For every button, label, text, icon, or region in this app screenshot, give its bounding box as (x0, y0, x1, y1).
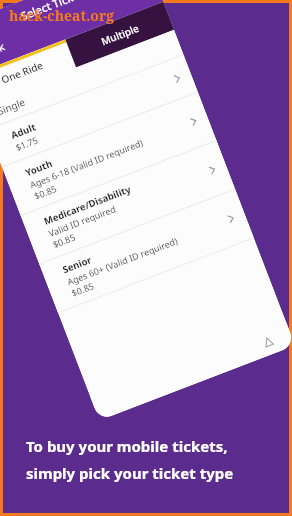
button[interactable]: Youth (2, 92, 217, 216)
staticText: Medicare/Disability (42, 182, 133, 228)
staticText: $1.75 (14, 133, 40, 153)
staticText: Multiple (99, 21, 141, 48)
staticText: $0.85 (32, 182, 59, 202)
staticText: Adult (9, 120, 38, 142)
button[interactable]: Back (0, 36, 10, 68)
staticText: Senior (61, 253, 94, 276)
button[interactable]: Multiple (65, 2, 174, 67)
staticText: $0.85 (69, 279, 96, 299)
staticText: Select Ticket (18, 0, 85, 23)
button[interactable]: Back (258, 332, 279, 352)
staticText: Youth (23, 157, 54, 179)
staticText: Ages 6-18 (Valid ID required) (28, 136, 145, 190)
button[interactable]: Senior (39, 189, 254, 313)
staticText: To buy your mobile tickets, (26, 436, 228, 456)
staticText: One Ride (0, 58, 45, 86)
staticText: Valid ID required (47, 202, 117, 239)
button[interactable]: One Ride (0, 39, 76, 105)
button[interactable]: Medicare/Disability (21, 141, 235, 265)
staticText: $0.85 (51, 230, 78, 250)
staticText: Back (0, 38, 7, 61)
staticText: Single (0, 95, 27, 118)
staticText: Ages 60+ (Valid ID required) (65, 234, 180, 287)
staticText: hack-cheat.org (9, 6, 115, 25)
staticText: simply pick your ticket type (26, 463, 234, 483)
button[interactable]: Adult (0, 55, 198, 168)
